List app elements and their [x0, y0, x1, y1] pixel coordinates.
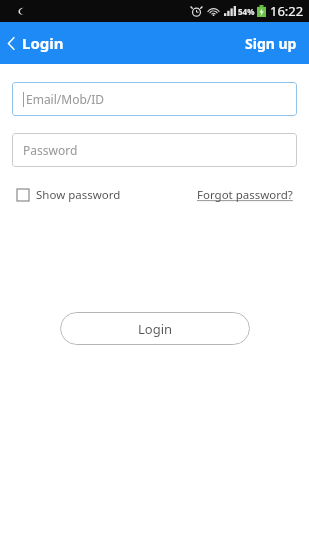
other: Back	[7, 36, 16, 51]
button[interactable]: Login	[60, 312, 250, 345]
staticText: Sign up	[245, 34, 297, 53]
staticText: 54%	[238, 6, 255, 17]
button[interactable]: Sign up	[233, 28, 309, 59]
button[interactable]: Email/Mob/ID	[12, 82, 297, 116]
staticText: 16:22	[270, 2, 304, 20]
staticText: Forgot password?	[197, 187, 293, 203]
staticText: Email/Mob/ID	[26, 91, 105, 107]
button[interactable]: Back	[0, 29, 74, 57]
button[interactable]: Forgot password?	[193, 184, 297, 206]
staticText: Show password	[36, 187, 121, 203]
button[interactable]: Show password	[12, 184, 126, 206]
staticText: Login	[22, 33, 64, 53]
staticText: Password	[23, 142, 78, 158]
staticText: Login	[138, 320, 173, 338]
button[interactable]: Password	[12, 133, 297, 167]
